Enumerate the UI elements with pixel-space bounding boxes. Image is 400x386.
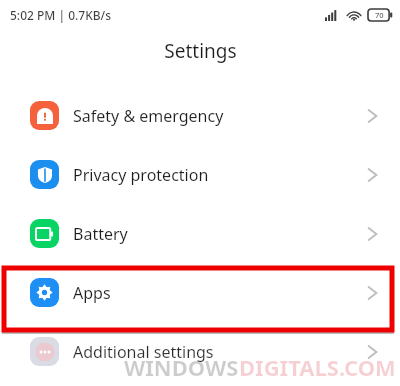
staticText: 70 (375, 10, 384, 20)
button[interactable]: Safety & emergency (0, 86, 400, 145)
button[interactable]: Privacy protection (0, 145, 400, 204)
staticText: Settings (164, 38, 237, 64)
staticText: Apps (73, 282, 111, 304)
staticText: Additional settings (73, 341, 214, 363)
button[interactable]: Battery (0, 204, 400, 263)
staticText: WINDOWS (124, 352, 239, 382)
staticText: Safety & emergency (73, 105, 224, 127)
button[interactable]: Additional settings (0, 322, 400, 381)
staticText: DIGITALS.COM (239, 352, 396, 382)
staticText: 5:02 PM | 0.7KB/s (10, 7, 112, 23)
staticText: Battery (73, 223, 128, 245)
button[interactable]: Apps (0, 263, 400, 322)
staticText: Privacy protection (73, 164, 209, 186)
